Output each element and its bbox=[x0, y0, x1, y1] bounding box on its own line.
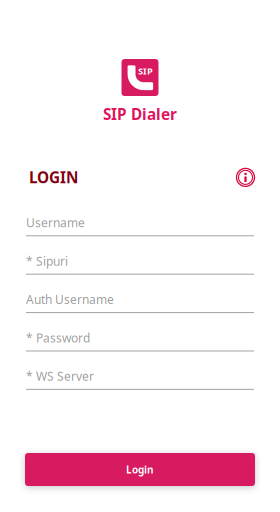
staticText: * Password bbox=[26, 330, 90, 346]
staticText: Auth Username bbox=[26, 291, 114, 307]
button[interactable]: Information bbox=[236, 168, 255, 187]
staticText: Username bbox=[26, 214, 85, 231]
staticText: Login bbox=[126, 463, 154, 476]
staticText: LOGIN bbox=[29, 167, 78, 188]
staticText: * Sipuri bbox=[26, 253, 68, 269]
staticText: SIP Dialer bbox=[103, 103, 177, 124]
button[interactable]: Login bbox=[25, 453, 255, 486]
staticText: SIP bbox=[138, 64, 153, 77]
staticText: * WS Server bbox=[26, 368, 94, 384]
